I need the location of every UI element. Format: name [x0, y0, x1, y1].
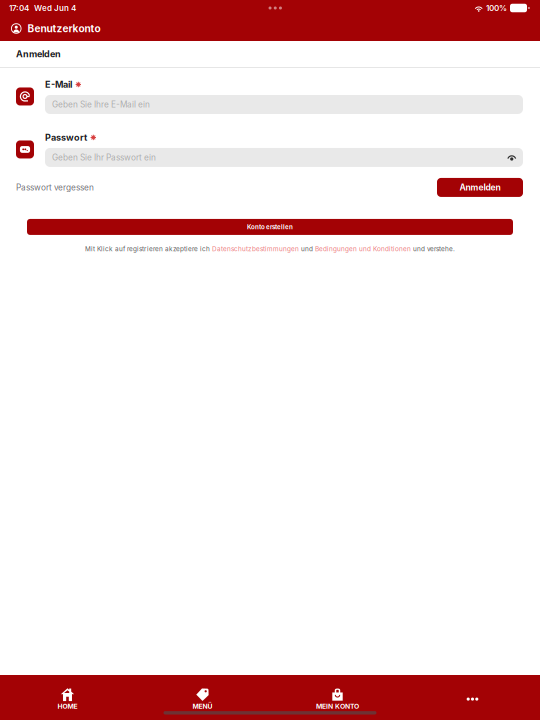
button[interactable]: Anmelden — [437, 178, 523, 197]
staticText: Anmelden — [16, 48, 61, 59]
staticText: Wed Jun 4 — [34, 3, 76, 13]
staticText: Datenschutzbestimmungen — [212, 245, 299, 253]
button[interactable]: Benutzerkonto — [0, 16, 540, 41]
staticText: Mit Klick auf registrieren akzeptiere ic… — [85, 245, 212, 253]
button[interactable]: MEIN KONTO — [270, 675, 405, 720]
staticText: MENÜ — [192, 702, 212, 710]
staticText: und verstehe. — [411, 245, 455, 253]
staticText: Benutzerkonto — [27, 22, 100, 35]
button[interactable]: Passwort vergessen — [16, 179, 94, 195]
staticText: Geben Sie Ihre E-Mail ein — [52, 99, 150, 109]
staticText: Passwort — [45, 132, 87, 143]
button[interactable]: Passwort anzeigen — [500, 148, 523, 167]
staticText: MEIN KONTO — [316, 702, 359, 710]
staticText: Anmelden — [459, 182, 500, 193]
staticText: Bedingungen und Konditionen — [315, 245, 411, 253]
staticText: Konto erstellen — [247, 223, 293, 231]
button[interactable]: Konto erstellen — [27, 219, 513, 235]
staticText: HOME — [57, 702, 77, 710]
button[interactable]: Bedingungen und Konditionen — [315, 245, 411, 253]
button[interactable]: HOME — [0, 675, 135, 720]
button[interactable]: MENÜ — [135, 675, 270, 720]
button[interactable]: Datenschutzbestimmungen — [212, 245, 299, 253]
staticText: 100% — [486, 3, 507, 13]
staticText: Passwort vergessen — [16, 182, 94, 192]
staticText: Geben Sie Ihr Passwort ein — [52, 152, 156, 162]
button[interactable]: Mehr — [405, 675, 540, 720]
staticText: und — [299, 245, 315, 253]
staticText: E-Mail — [45, 79, 72, 90]
staticText: 17:04 — [9, 3, 29, 13]
